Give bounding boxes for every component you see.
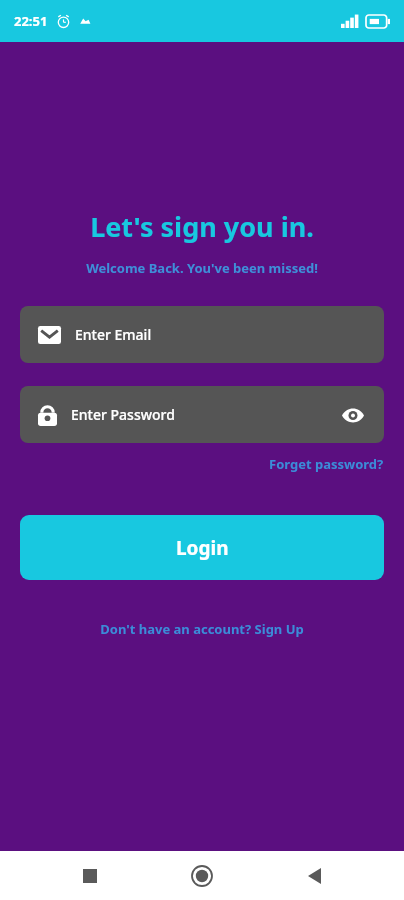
staticText: 22:51 bbox=[14, 12, 48, 30]
staticText: Let's sign you in. bbox=[0, 208, 404, 245]
staticText: Don't have an account? Sign Up bbox=[100, 620, 304, 638]
staticText: Enter Password bbox=[71, 405, 175, 424]
button[interactable]: Show password bbox=[340, 402, 366, 428]
staticText: Enter Email bbox=[75, 325, 152, 344]
button[interactable]: Enter Password bbox=[20, 386, 384, 443]
staticText: Forget password? bbox=[269, 455, 384, 473]
button[interactable]: Recents bbox=[70, 856, 110, 896]
button[interactable]: Home bbox=[182, 856, 222, 896]
button[interactable]: Login bbox=[20, 515, 384, 580]
staticText: Welcome Back. You've been missed! bbox=[0, 259, 404, 277]
button[interactable]: Back bbox=[294, 856, 334, 896]
button[interactable]: Don't have an account? Sign Up bbox=[100, 620, 304, 638]
button[interactable]: Forget password? bbox=[269, 455, 384, 473]
button[interactable]: Enter Email bbox=[20, 306, 384, 363]
staticText: Login bbox=[176, 535, 229, 561]
